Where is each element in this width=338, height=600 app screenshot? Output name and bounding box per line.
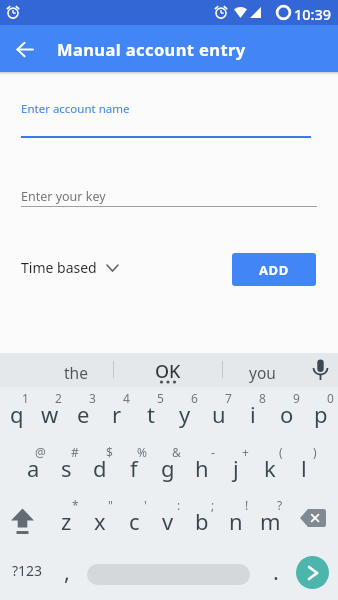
button[interactable]: e (66, 387, 100, 441)
staticText: 0 (327, 390, 334, 406)
button[interactable]: g (151, 441, 185, 494)
staticText: q (10, 399, 24, 429)
staticText: Time based (21, 258, 97, 277)
staticText: z (61, 506, 72, 536)
staticText: Enter account name (21, 101, 130, 117)
staticText: you (249, 362, 276, 383)
staticText: 1 (22, 390, 29, 406)
button[interactable]: OK (114, 353, 222, 387)
staticText: h (195, 453, 209, 483)
button[interactable] (84, 548, 253, 600)
staticText: m (260, 506, 281, 536)
staticText: . (273, 556, 279, 586)
staticText: $ (106, 444, 113, 460)
staticText: Enter your key (21, 188, 106, 205)
staticText: ) (313, 444, 317, 460)
button[interactable]: z (50, 494, 83, 548)
button[interactable]: the (0, 353, 113, 387)
button[interactable]: f (117, 441, 151, 494)
staticText: 5 (157, 390, 164, 406)
button[interactable]: u (202, 387, 236, 441)
button[interactable]: r (100, 387, 134, 441)
staticText: i (250, 399, 256, 429)
staticText: k (264, 453, 276, 483)
button[interactable]: m (253, 494, 287, 548)
staticText: % (137, 444, 147, 460)
staticText: 10:39 (294, 4, 332, 24)
staticText: + (242, 444, 249, 460)
button[interactable]: l (287, 441, 321, 494)
staticText: Manual account entry (57, 38, 246, 60)
staticText: b (195, 506, 209, 536)
staticText: v (162, 506, 174, 536)
staticText: 9 (293, 390, 300, 406)
staticText: & (172, 444, 181, 460)
button[interactable]: w (33, 387, 66, 441)
staticText: ! (245, 497, 249, 513)
staticText: j (233, 453, 239, 483)
button[interactable]: n (219, 494, 253, 548)
staticText: t (147, 399, 155, 429)
button[interactable]: , (50, 548, 84, 600)
button[interactable]: c (117, 494, 151, 548)
staticText: r (112, 399, 122, 429)
button[interactable]: a (17, 441, 50, 494)
button[interactable]: i (236, 387, 270, 441)
button[interactable]: y (168, 387, 202, 441)
button[interactable]: h (185, 441, 219, 494)
staticText: p (314, 399, 328, 429)
button[interactable] (302, 353, 338, 387)
button[interactable]: o (270, 387, 304, 441)
staticText: * (72, 497, 79, 513)
staticText: " (108, 497, 113, 513)
staticText: x (94, 506, 106, 536)
button[interactable] (11, 35, 39, 63)
button[interactable]: b (185, 494, 219, 548)
button[interactable] (287, 494, 338, 548)
staticText: f (130, 453, 138, 483)
staticText: d (93, 453, 107, 483)
button[interactable]: ?123 (0, 548, 50, 600)
button[interactable]: . (253, 548, 287, 600)
button[interactable]: k (253, 441, 287, 494)
staticText: 2 (55, 390, 62, 406)
button[interactable]: d (83, 441, 117, 494)
staticText: 7 (225, 390, 232, 406)
staticText: o (280, 399, 294, 429)
staticText: 4 (123, 390, 130, 406)
staticText: g (161, 453, 175, 483)
button[interactable]: x (83, 494, 117, 548)
staticText: - (211, 444, 215, 460)
button[interactable]: Time based (21, 258, 119, 277)
staticText: ( (279, 444, 283, 460)
staticText: ? (277, 497, 283, 513)
staticText: : (177, 497, 181, 513)
staticText: ; (211, 497, 215, 513)
button[interactable]: t (134, 387, 168, 441)
staticText: , (64, 556, 70, 586)
button[interactable]: q (0, 387, 33, 441)
staticText: w (41, 399, 59, 429)
staticText: # (71, 444, 79, 460)
staticText: y (179, 399, 191, 429)
button[interactable]: v (151, 494, 185, 548)
staticText: ' (144, 497, 147, 513)
button[interactable]: j (219, 441, 253, 494)
button[interactable]: p (304, 387, 338, 441)
staticText: 3 (89, 390, 96, 406)
button[interactable] (287, 548, 338, 600)
staticText: n (229, 506, 243, 536)
staticText: OK (155, 359, 181, 384)
staticText: 6 (191, 390, 198, 406)
staticText: a (27, 453, 40, 483)
button[interactable] (0, 494, 50, 548)
button[interactable]: s (50, 441, 83, 494)
button[interactable]: you (223, 353, 302, 387)
staticText: 8 (259, 390, 266, 406)
staticText: the (64, 362, 88, 383)
staticText: l (301, 453, 307, 483)
staticText: c (129, 506, 140, 536)
staticText: u (212, 399, 226, 429)
staticText: ADD (259, 261, 289, 279)
button[interactable]: ADD (232, 253, 316, 286)
